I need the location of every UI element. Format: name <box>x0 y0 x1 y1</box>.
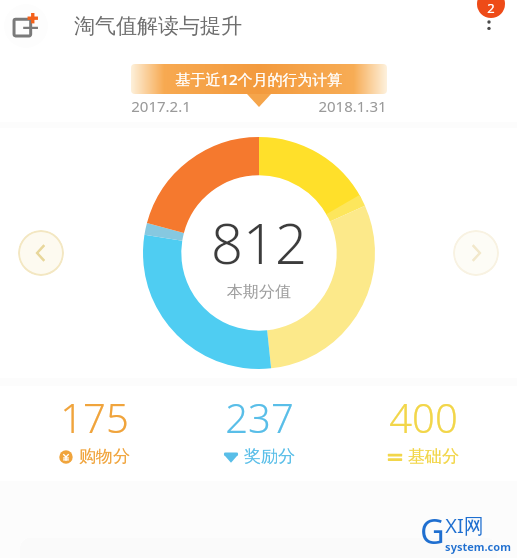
staticText: 237 <box>225 390 294 444</box>
staticText: 2 <box>487 0 495 17</box>
staticText: 淘气值解读与提升 <box>74 13 242 39</box>
button[interactable]: More options <box>469 6 509 46</box>
staticText: 812 <box>211 204 307 280</box>
staticText: 2018.1.31 <box>318 96 387 116</box>
staticText: 基于近12个月的行为计算 <box>175 69 343 89</box>
staticText: 400 <box>389 390 458 444</box>
staticText: 奖励分 <box>244 446 295 467</box>
staticText: 基础分 <box>408 446 459 467</box>
staticText: XI网 <box>445 512 484 539</box>
staticText: 购物分 <box>79 446 130 467</box>
button[interactable]: 237 <box>189 386 329 467</box>
staticText: 2017.2.1 <box>131 96 191 116</box>
button[interactable]: Next period <box>453 230 499 276</box>
staticText: 本期分值 <box>227 282 291 302</box>
staticText: G <box>420 508 445 554</box>
button[interactable]: Previous period <box>18 230 64 276</box>
button[interactable]: Taobao <box>4 4 48 48</box>
button[interactable]: 400 <box>353 386 493 467</box>
button[interactable]: 175 <box>24 386 164 467</box>
staticText: 175 <box>60 390 129 444</box>
staticText: system.com <box>445 539 511 554</box>
